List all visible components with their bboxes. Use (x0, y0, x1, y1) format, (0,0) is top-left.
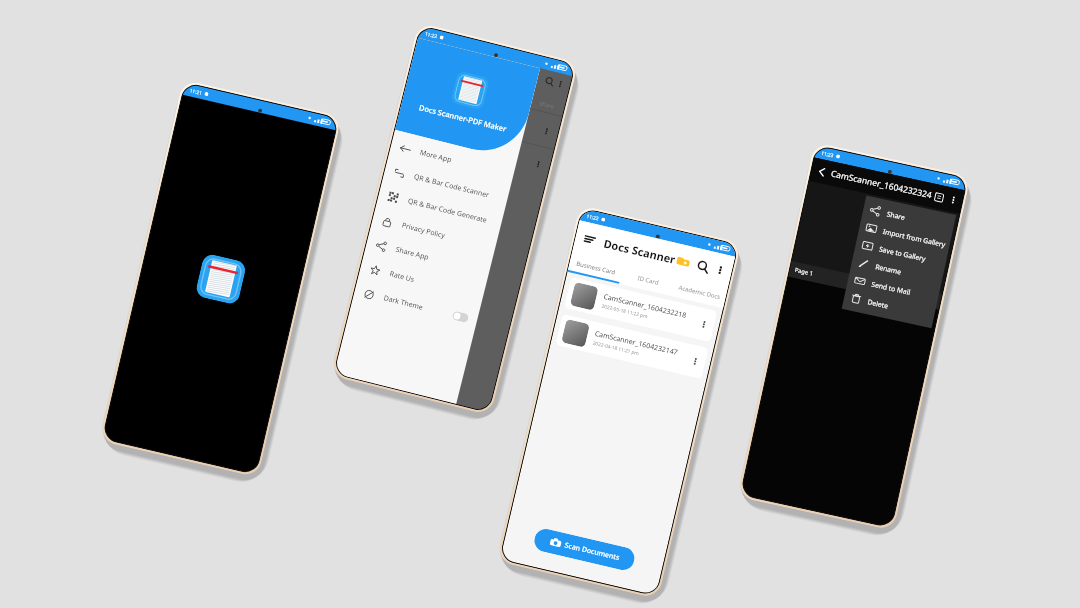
staticText: Send to Mail (871, 280, 912, 297)
button[interactable]: Share (862, 199, 955, 236)
button[interactable]: ID Card (620, 265, 676, 296)
staticText: Dark Theme (382, 293, 425, 313)
staticText: QR & Bar Code Generate (407, 196, 488, 226)
button[interactable]: Document options (698, 318, 710, 330)
staticText: 11:23 (820, 150, 835, 159)
staticText: CamScanner_1604232324 (830, 167, 933, 201)
staticText: CamScanner_1604232218 (602, 292, 687, 321)
staticText: Share App (395, 245, 430, 263)
staticText: Privacy Policy (401, 221, 447, 241)
staticText: Share (539, 99, 555, 110)
button[interactable]: Academic Docs (671, 277, 728, 308)
staticText: 11:21 (189, 87, 203, 97)
staticText: Business Card (576, 260, 616, 277)
button[interactable]: Share App (364, 230, 492, 285)
button[interactable]: CamScanner_1604232218 (564, 277, 717, 342)
button[interactable]: Search (696, 259, 710, 274)
button[interactable]: More options (714, 263, 727, 277)
button[interactable]: Rename (850, 252, 944, 289)
button[interactable]: CamScanner_1604232147 (555, 314, 709, 379)
button[interactable]: Export PDF (934, 192, 944, 203)
staticText: Docs Scanner-PDF Maker (400, 98, 525, 138)
button[interactable]: Privacy Policy (370, 205, 498, 260)
staticText: Share (886, 209, 906, 222)
button[interactable]: Import from Gallery (858, 217, 951, 254)
button[interactable]: Scan Documents (532, 527, 637, 572)
button[interactable]: Back (815, 165, 828, 178)
button[interactable]: Open navigation drawer (582, 232, 598, 247)
staticText: ID Card (637, 274, 660, 287)
button[interactable]: Send to Mail (846, 270, 940, 307)
staticText: Docs Scanner (602, 236, 678, 267)
staticText: Delete (867, 297, 889, 310)
staticText: Scan Documents (564, 540, 620, 563)
staticText: Rate Us (388, 269, 416, 285)
staticText: Rename (874, 262, 903, 277)
staticText: 11:22 (424, 30, 438, 40)
staticText: Academic Docs (678, 284, 721, 301)
button[interactable]: QR & Bar Code Generate (376, 181, 504, 236)
button[interactable]: Save to Gallery (854, 234, 948, 272)
staticText: QR & Bar Code Scanner (413, 172, 491, 201)
button[interactable]: Delete (842, 287, 936, 324)
staticText: Page 1 (794, 266, 814, 278)
button[interactable]: Dark Theme (352, 278, 480, 333)
staticText: CamScanner_1604232147 (594, 329, 679, 358)
staticText: 2022-05-18 11:22 pm (601, 303, 649, 320)
staticText: Import from Gallery (882, 227, 946, 249)
staticText: Save to Gallery (878, 244, 927, 263)
button[interactable]: More App (388, 133, 516, 188)
staticText: More App (419, 148, 453, 165)
button[interactable]: Document options (689, 355, 701, 367)
button[interactable]: New folder (675, 254, 691, 269)
button[interactable]: Business Card (567, 252, 624, 284)
button[interactable]: More options (947, 194, 959, 206)
button[interactable]: QR & Bar Code Scanner (382, 157, 510, 212)
staticText: 2022-04-18 11:21 pm (592, 339, 640, 357)
button[interactable]: Rate Us (358, 254, 486, 309)
staticText: 11:22 (586, 213, 600, 223)
